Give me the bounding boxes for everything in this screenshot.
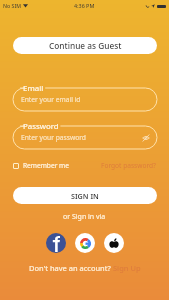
- staticText: SIGN IN: [71, 191, 99, 201]
- staticText: Enter your email id: [21, 95, 81, 104]
- button[interactable]: Sign Up: [113, 263, 141, 273]
- button[interactable]: Enter your password: [13, 126, 157, 149]
- staticText: Continue as Guest: [49, 40, 122, 51]
- button[interactable]: Sign in with Apple: [104, 233, 124, 253]
- button[interactable]: Forgot password?: [101, 161, 156, 170]
- staticText: 4:36 PM: [74, 2, 95, 9]
- button[interactable]: SIGN IN: [13, 187, 157, 204]
- staticText: Email: [23, 83, 44, 94]
- staticText: No SIM: [3, 2, 21, 9]
- button[interactable]: Sign in with Facebook: [46, 233, 66, 253]
- staticText: Remember me: [23, 161, 69, 170]
- button[interactable]: Enter your email id: [13, 88, 157, 111]
- button[interactable]: Remember me: [13, 161, 69, 170]
- button[interactable]: Sign in with Google: [75, 233, 95, 253]
- staticText: Enter your password: [21, 133, 86, 142]
- button[interactable]: Continue as Guest: [13, 37, 157, 54]
- staticText: Password: [23, 121, 59, 132]
- staticText: Don't have an account?: [29, 263, 113, 273]
- staticText: or Sign in via: [63, 212, 106, 222]
- other: Show password: [142, 134, 150, 142]
